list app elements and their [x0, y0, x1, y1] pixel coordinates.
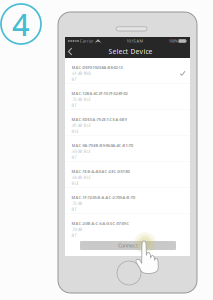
staticText: 100%: [169, 38, 179, 44]
staticText: MAC:12BA:4C2F:10:7F:52:8F:02: [71, 91, 127, 96]
button[interactable]: Connect: [80, 241, 176, 250]
staticText: MAC:1F:72:05:B:A:AC:2:709:A:B:7D: [71, 195, 135, 200]
button[interactable]: MAC:DEF0:1923:8A:B8:02:13: [65, 58, 190, 84]
staticText: MAC:1E:B:A:A0:AC:2:EC:0:57:80: [71, 169, 129, 174]
staticText: -81 dB BLE: [71, 123, 90, 128]
staticText: BT: [71, 102, 76, 108]
staticText: MAC:2:0B:A:C:6:A:0:3:C:07:09:C: [71, 221, 129, 226]
staticText: BT: [71, 76, 76, 82]
staticText: -72 dB: [71, 201, 82, 206]
staticText: Connect: [118, 242, 138, 249]
button[interactable]: MAC:1F:72:05:B:A:AC:2:709:A:B:7D: [65, 188, 190, 214]
staticText: -63 dB BLE: [71, 149, 90, 154]
staticText: BLE: [71, 128, 78, 134]
staticText: Carrier: [79, 38, 95, 44]
staticText: -72 dB BLE: [71, 97, 90, 102]
staticText: 10:15 AM: [126, 38, 143, 44]
button[interactable]: MAC:12BA:4C2F:10:7F:52:8F:02: [65, 84, 190, 110]
staticText: BT: [71, 154, 76, 160]
staticText: MAC:9A:79:EB:B9:96:0A:4C:B1:7D: [71, 143, 133, 148]
staticText: BLE: [71, 180, 78, 186]
staticText: BT: [71, 206, 76, 212]
staticText: 4: [12, 4, 30, 44]
button[interactable]: MAC:2:0B:A:C:6:A:0:3:C:07:09:C: [65, 214, 190, 240]
button[interactable]: Back: [68, 45, 78, 58]
button[interactable]: MAC:5DE3:A:79:2E:1:CE:A:6B9: [65, 110, 190, 136]
button[interactable]: MAC:1E:B:A:A0:AC:2:EC:0:57:80: [65, 162, 190, 188]
staticText: MAC:5DE3:A:79:2E:1:CE:A:6B9: [71, 117, 126, 122]
button[interactable]: MAC:9A:79:EB:B9:96:0A:4C:B1:7D: [65, 136, 190, 162]
staticText: MAC:DEF0:1923:8A:B8:02:13: [71, 65, 122, 70]
staticText: -64 dB BLE: [71, 175, 90, 180]
staticText: -61 dB RSSI: [71, 71, 90, 76]
staticText: Select Device: [108, 47, 152, 56]
staticText: -74 dB: [71, 227, 82, 232]
staticText: BT: [71, 232, 76, 238]
